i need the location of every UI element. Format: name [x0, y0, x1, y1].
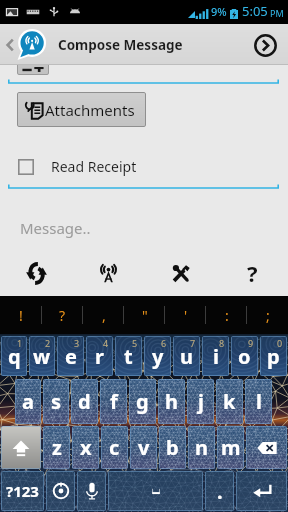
staticText: e	[65, 343, 77, 370]
button[interactable]: b	[159, 426, 186, 469]
staticText: 8	[219, 337, 225, 349]
button[interactable]: '	[165, 296, 206, 334]
button[interactable]: q	[1, 336, 27, 376]
staticText: h	[165, 388, 178, 415]
button[interactable]: z	[43, 426, 70, 469]
staticText: ?	[59, 306, 66, 325]
button[interactable]: k	[216, 379, 243, 424]
staticText: c	[109, 434, 120, 461]
staticText: 1	[17, 337, 23, 349]
button[interactable]: ,	[83, 296, 124, 334]
staticText: Attachments	[45, 100, 135, 120]
staticText: .	[217, 478, 223, 505]
staticText: Compose Message	[58, 36, 183, 54]
button[interactable]: Attachments	[17, 92, 146, 127]
staticText: "	[142, 306, 148, 325]
button[interactable]: x	[72, 426, 99, 469]
button[interactable]: g	[129, 379, 156, 424]
button[interactable]: ;	[247, 296, 288, 334]
button[interactable]: j	[187, 379, 214, 424]
staticText: 7	[190, 337, 196, 349]
staticText: a	[22, 388, 34, 415]
button[interactable]: Shift	[1, 426, 41, 469]
staticText: 9%	[211, 4, 227, 19]
button[interactable]: e	[57, 336, 84, 376]
button[interactable]: Next	[247, 27, 283, 63]
staticText: PM	[270, 7, 284, 19]
staticText: i	[213, 343, 219, 370]
staticText: 3	[74, 337, 80, 349]
button[interactable]: Settings	[46, 471, 75, 511]
staticText: u	[180, 343, 193, 370]
staticText: 4	[103, 337, 109, 349]
staticText: r	[95, 343, 104, 370]
button[interactable]: w	[29, 336, 55, 376]
button[interactable]: c	[101, 426, 128, 469]
button[interactable]: Voice input	[77, 471, 106, 511]
button[interactable]: i	[202, 336, 229, 376]
button[interactable]: h	[158, 379, 185, 424]
staticText: v	[138, 434, 150, 461]
staticText: g	[136, 388, 149, 415]
button[interactable]: d	[71, 379, 98, 424]
button[interactable]: !	[0, 296, 42, 334]
button[interactable]: v	[130, 426, 157, 469]
button[interactable]: m	[217, 426, 244, 469]
button[interactable]: s	[43, 379, 69, 424]
button[interactable]: p	[260, 336, 287, 376]
button[interactable]: Broadcast	[72, 251, 144, 295]
staticText: 6	[161, 337, 167, 349]
button[interactable]: r	[86, 336, 113, 376]
staticText: o	[238, 343, 251, 370]
staticText: 9	[248, 337, 254, 349]
button[interactable]: y	[144, 336, 171, 376]
button[interactable]: ?123	[1, 471, 44, 511]
button[interactable]: l	[245, 379, 272, 424]
staticText: n	[195, 434, 208, 461]
staticText: '	[184, 306, 188, 325]
button[interactable]: ?	[42, 296, 83, 334]
button[interactable]: u	[173, 336, 200, 376]
staticText: Read Receipt	[51, 157, 137, 176]
staticText: w	[33, 343, 51, 370]
button[interactable]: Space	[108, 471, 203, 511]
staticText: 5:05	[242, 2, 268, 20]
staticText: j	[198, 388, 204, 415]
staticText: ,	[102, 306, 106, 325]
button[interactable]: Read Receipt	[0, 153, 288, 180]
staticText: x	[80, 434, 92, 461]
button[interactable]: f	[100, 379, 127, 424]
button[interactable]: a	[15, 379, 41, 424]
staticText: z	[52, 434, 62, 461]
button[interactable]: Settings	[144, 251, 216, 295]
button[interactable]: o	[231, 336, 258, 376]
staticText: t	[124, 343, 133, 370]
staticText: Message..	[20, 218, 91, 238]
staticText: ?	[247, 258, 258, 288]
staticText: p	[267, 343, 280, 370]
button[interactable]: n	[188, 426, 215, 469]
staticText: 2	[45, 337, 51, 349]
button[interactable]: :	[206, 296, 247, 334]
button[interactable]: t	[115, 336, 142, 376]
staticText: k	[223, 388, 236, 415]
staticText: f	[110, 388, 118, 415]
button[interactable]: Up	[4, 29, 49, 60]
staticText: q	[8, 343, 21, 370]
staticText: d	[78, 388, 91, 415]
button[interactable]: Add recipient	[17, 65, 49, 75]
staticText: ?123	[6, 481, 39, 501]
staticText: l	[256, 388, 262, 415]
staticText: !	[19, 306, 23, 325]
button[interactable]: .	[205, 471, 234, 511]
button[interactable]: Refresh	[0, 251, 72, 295]
button[interactable]: Delete	[246, 426, 287, 469]
staticText: m	[221, 434, 241, 461]
button[interactable]: "	[124, 296, 165, 334]
staticText: s	[51, 388, 62, 415]
staticText: b	[166, 434, 179, 461]
staticText: y	[152, 343, 164, 370]
staticText: ;	[266, 306, 270, 325]
button[interactable]: ?	[216, 251, 288, 295]
button[interactable]: Enter	[236, 471, 287, 511]
